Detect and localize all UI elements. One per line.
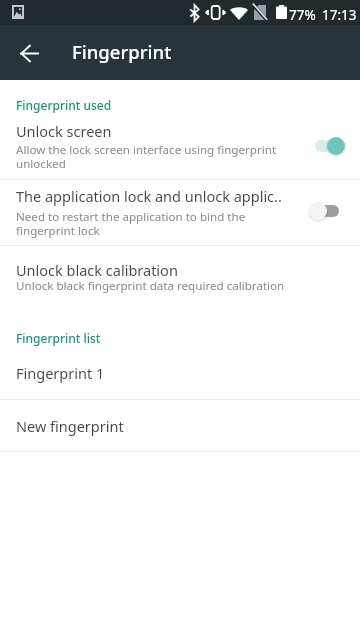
staticText: Unlock black fingerprint data required c… — [16, 278, 285, 294]
staticText: The application lock and unlock applic.. — [16, 186, 282, 206]
button[interactable]: Back — [11, 35, 47, 71]
staticText: Fingerprint list — [16, 330, 101, 346]
staticText: Fingerprint 1 — [16, 363, 105, 383]
staticText: Need to restart the application to bind … — [16, 209, 298, 238]
button[interactable]: Unlock screen — [0, 113, 360, 179]
button[interactable]: Fingerprint 1 — [0, 352, 360, 399]
button[interactable]: Unlock black calibration — [0, 246, 360, 310]
staticText: Unlock black calibration — [16, 260, 178, 280]
staticText: Fingerprint used — [16, 97, 112, 113]
staticText: Fingerprint — [72, 39, 172, 64]
button[interactable]: New fingerprint — [0, 400, 360, 451]
button[interactable]: The application lock and unlock applic.. — [0, 180, 360, 245]
staticText: New fingerprint — [16, 416, 124, 436]
staticText: Unlock screen — [16, 121, 112, 141]
button[interactable]: Switch on — [310, 136, 346, 156]
button[interactable]: Switch off — [308, 201, 344, 221]
staticText: 77% — [289, 6, 316, 24]
staticText: Allow the lock screen interface using fi… — [16, 142, 298, 171]
staticText: 17:13 — [322, 6, 357, 24]
